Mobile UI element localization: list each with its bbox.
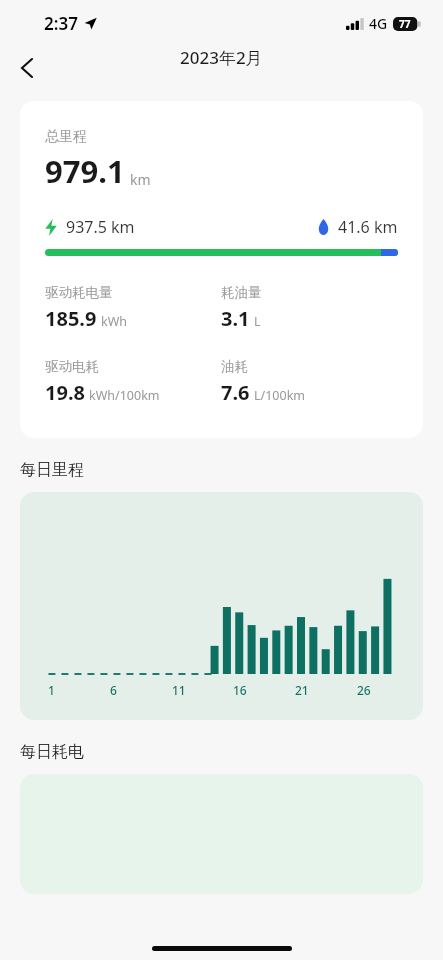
staticText: 驱动电耗 bbox=[45, 358, 99, 375]
staticText: kWh bbox=[101, 313, 128, 330]
staticText: 2023年2月 bbox=[180, 46, 263, 69]
staticText: 7.6 bbox=[221, 379, 250, 406]
staticText: 21 bbox=[295, 682, 309, 698]
staticText: 19.8 bbox=[45, 379, 85, 406]
staticText: 每日耗电 bbox=[20, 742, 84, 762]
staticText: 979.1 bbox=[45, 150, 125, 192]
staticText: 26 bbox=[357, 682, 371, 698]
staticText: kWh/100km bbox=[89, 387, 160, 404]
staticText: L bbox=[254, 313, 261, 330]
staticText: 耗油量 bbox=[221, 284, 262, 301]
staticText: 驱动耗电量 bbox=[45, 284, 113, 301]
staticText: 937.5 km bbox=[66, 216, 135, 238]
button[interactable]: 总里程 bbox=[20, 101, 423, 438]
staticText: 11 bbox=[172, 682, 186, 698]
staticText: 3.1 bbox=[221, 305, 250, 332]
staticText: 总里程 bbox=[45, 128, 87, 146]
staticText: 185.9 bbox=[45, 305, 97, 332]
staticText: 油耗 bbox=[221, 358, 248, 375]
staticText: 6 bbox=[110, 682, 117, 698]
staticText: 1 bbox=[48, 682, 55, 698]
staticText: 每日里程 bbox=[20, 460, 84, 480]
staticText: 77 bbox=[399, 17, 411, 31]
staticText: 2:37 bbox=[44, 12, 78, 35]
staticText: L/100km bbox=[254, 387, 306, 404]
staticText: 4G bbox=[369, 14, 388, 33]
staticText: 16 bbox=[233, 682, 247, 698]
button[interactable]: 返回 bbox=[7, 48, 47, 88]
button[interactable]: 1 bbox=[20, 492, 423, 720]
staticText: km bbox=[130, 170, 151, 189]
staticText: 41.6 km bbox=[338, 216, 398, 238]
